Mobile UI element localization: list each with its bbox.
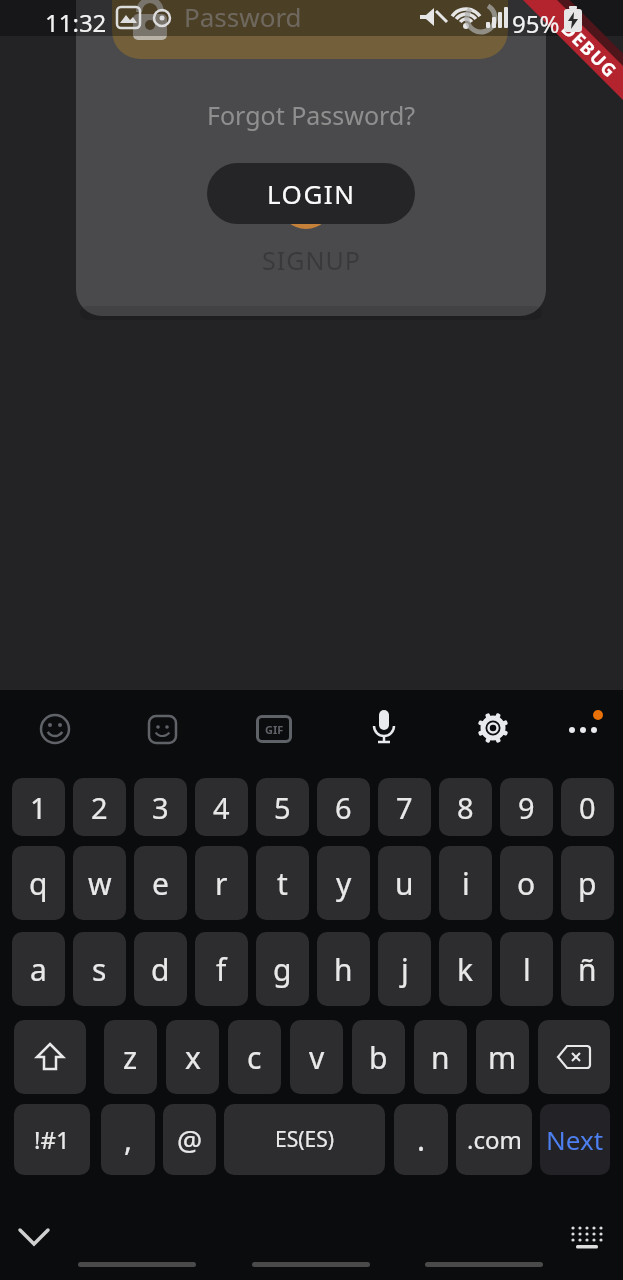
button[interactable]: y [317, 846, 370, 920]
staticText: DEBUG [557, 17, 623, 83]
button[interactable]: 0 [561, 778, 614, 836]
button[interactable] [538, 1020, 610, 1094]
button[interactable] [112, 0, 508, 59]
button[interactable]: 9 [500, 778, 553, 836]
button[interactable]: l [500, 932, 553, 1006]
staticText: o [517, 863, 536, 904]
button[interactable]: 1 [12, 778, 65, 836]
button[interactable]: b [352, 1020, 405, 1094]
staticText: 1 [30, 788, 47, 827]
button[interactable]: e [134, 846, 187, 920]
button[interactable]: 6 [317, 778, 370, 836]
staticText: 0 [579, 788, 596, 827]
button[interactable]: h [317, 932, 370, 1006]
button[interactable]: t [256, 846, 309, 920]
staticText: d [151, 949, 170, 990]
button[interactable]: ES(ES) [224, 1104, 385, 1175]
staticText: m [488, 1037, 517, 1078]
button[interactable]: d [134, 932, 187, 1006]
staticText: s [92, 949, 107, 990]
button[interactable]: v [290, 1020, 343, 1094]
staticText: i [462, 863, 470, 904]
button[interactable] [564, 708, 608, 752]
staticText: 5 [274, 788, 291, 827]
button[interactable]: f [195, 932, 248, 1006]
button[interactable] [252, 1262, 370, 1267]
staticText: k [457, 949, 474, 990]
button[interactable]: 3 [134, 778, 187, 836]
button[interactable]: o [500, 846, 553, 920]
button[interactable]: i [439, 846, 492, 920]
button[interactable] [473, 708, 513, 748]
button[interactable]: ñ [561, 932, 614, 1006]
staticText: .com [467, 1123, 522, 1156]
button[interactable]: SIGNUP [262, 243, 361, 277]
button[interactable]: @ [163, 1104, 216, 1175]
button[interactable]: 4 [195, 778, 248, 836]
staticText: b [369, 1037, 388, 1078]
staticText: Forgot Password? [207, 98, 416, 132]
button[interactable] [78, 1262, 196, 1267]
staticText: a [30, 949, 47, 990]
staticText: ñ [578, 949, 597, 990]
button[interactable]: q [12, 846, 65, 920]
button[interactable] [36, 710, 74, 748]
button[interactable]: j [378, 932, 431, 1006]
button[interactable]: u [378, 846, 431, 920]
button[interactable]: LOGIN [207, 163, 415, 224]
staticText: 8 [457, 788, 474, 827]
staticText: 11:32 [45, 6, 107, 39]
button[interactable] [144, 710, 182, 748]
button[interactable]: Next [540, 1104, 610, 1175]
button[interactable]: 7 [378, 778, 431, 836]
staticText: g [273, 949, 292, 990]
staticText: z [123, 1037, 138, 1078]
button[interactable]: z [104, 1020, 157, 1094]
staticText: 2 [91, 788, 108, 827]
button[interactable] [14, 1220, 58, 1254]
staticText: 7 [396, 788, 413, 827]
button[interactable]: s [73, 932, 126, 1006]
button[interactable]: .com [456, 1104, 532, 1175]
staticText: Next [546, 1122, 604, 1157]
staticText: t [277, 863, 288, 904]
button[interactable]: n [414, 1020, 467, 1094]
staticText: LOGIN [267, 176, 356, 211]
staticText: h [334, 949, 353, 990]
button[interactable]: g [256, 932, 309, 1006]
staticText: j [401, 949, 409, 990]
button[interactable]: w [73, 846, 126, 920]
staticText: c [247, 1037, 262, 1078]
button[interactable] [364, 708, 404, 748]
staticText: x [185, 1037, 201, 1078]
button[interactable]: k [439, 932, 492, 1006]
button[interactable]: m [476, 1020, 529, 1094]
staticText: y [336, 863, 352, 904]
button[interactable]: r [195, 846, 248, 920]
button[interactable]: p [561, 846, 614, 920]
staticText: Password [184, 0, 302, 34]
button[interactable]: 8 [439, 778, 492, 836]
button[interactable]: a [12, 932, 65, 1006]
button[interactable] [425, 1262, 543, 1267]
button[interactable]: Forgot Password? [207, 98, 416, 132]
button[interactable]: . [394, 1104, 448, 1175]
button[interactable] [566, 1222, 610, 1254]
button[interactable] [14, 1020, 86, 1094]
staticText: 4 [213, 788, 230, 827]
staticText: l [523, 949, 531, 990]
button[interactable]: !#1 [14, 1104, 90, 1175]
button[interactable]: GIF [256, 715, 292, 743]
staticText: f [216, 949, 227, 990]
staticText: @ [177, 1121, 203, 1159]
staticText: !#1 [34, 1123, 70, 1156]
staticText: v [309, 1037, 325, 1078]
button[interactable]: , [101, 1104, 155, 1175]
button[interactable]: 5 [256, 778, 309, 836]
button[interactable]: c [228, 1020, 281, 1094]
button[interactable]: 2 [73, 778, 126, 836]
staticText: w [88, 863, 112, 904]
button[interactable]: x [166, 1020, 219, 1094]
staticText: GIF [265, 722, 284, 737]
staticText: e [152, 863, 169, 904]
